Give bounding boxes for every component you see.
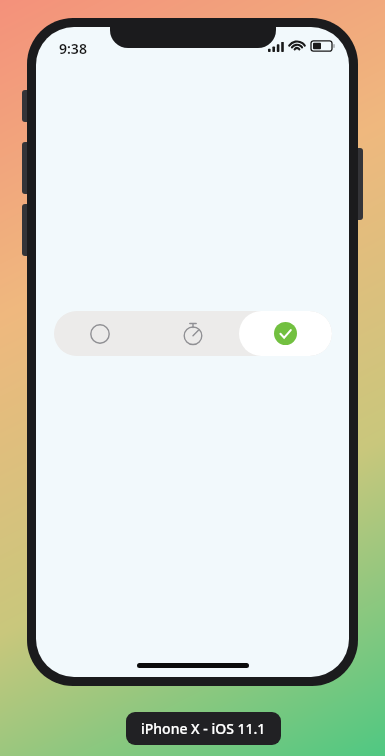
button[interactable]: Done <box>239 311 332 356</box>
button[interactable]: In progress <box>146 311 239 356</box>
button[interactable]: Pending <box>54 311 146 356</box>
staticText: 9:38 <box>59 39 87 58</box>
staticText: iPhone X - iOS 11.1 <box>141 719 266 738</box>
